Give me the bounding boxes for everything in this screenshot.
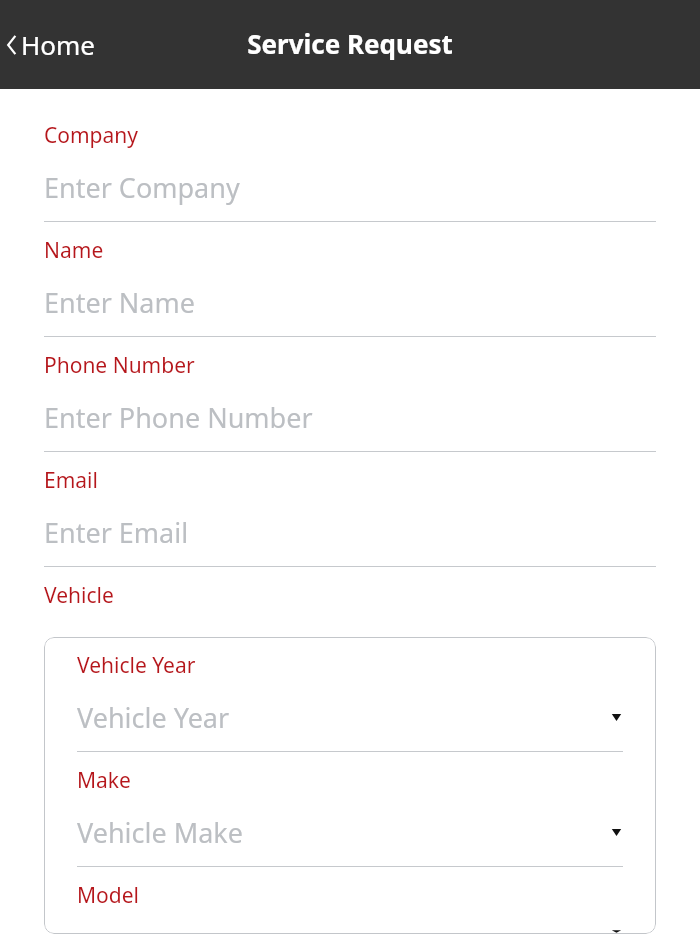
button[interactable]: Email xyxy=(44,452,656,567)
staticText: Make xyxy=(77,766,131,795)
staticText: Phone Number xyxy=(44,351,195,380)
staticText: Vehicle Make xyxy=(77,814,243,851)
button[interactable]: Home xyxy=(0,19,107,70)
button[interactable]: Make dropdown xyxy=(77,752,623,867)
staticText: Vehicle Year xyxy=(77,651,196,680)
button[interactable]: Company xyxy=(44,107,656,222)
button[interactable]: Name xyxy=(44,222,656,337)
staticText: Company xyxy=(44,121,138,150)
staticText: Model xyxy=(77,881,139,910)
staticText: Vehicle Year xyxy=(77,699,230,736)
button[interactable]: Phone Number xyxy=(44,337,656,452)
staticText: Enter Phone Number xyxy=(44,399,313,436)
button[interactable]: Model dropdown xyxy=(77,867,623,934)
staticText: Service Request xyxy=(247,26,453,61)
staticText: Enter Email xyxy=(44,514,189,551)
staticText: Home xyxy=(21,27,95,62)
staticText: Enter Company xyxy=(44,169,240,206)
staticText: Enter Name xyxy=(44,284,195,321)
staticText: Email xyxy=(44,466,98,495)
button[interactable]: Vehicle Year dropdown xyxy=(77,637,623,752)
staticText: Vehicle Model xyxy=(77,929,254,934)
staticText: Vehicle xyxy=(44,581,114,610)
staticText: Name xyxy=(44,236,104,265)
